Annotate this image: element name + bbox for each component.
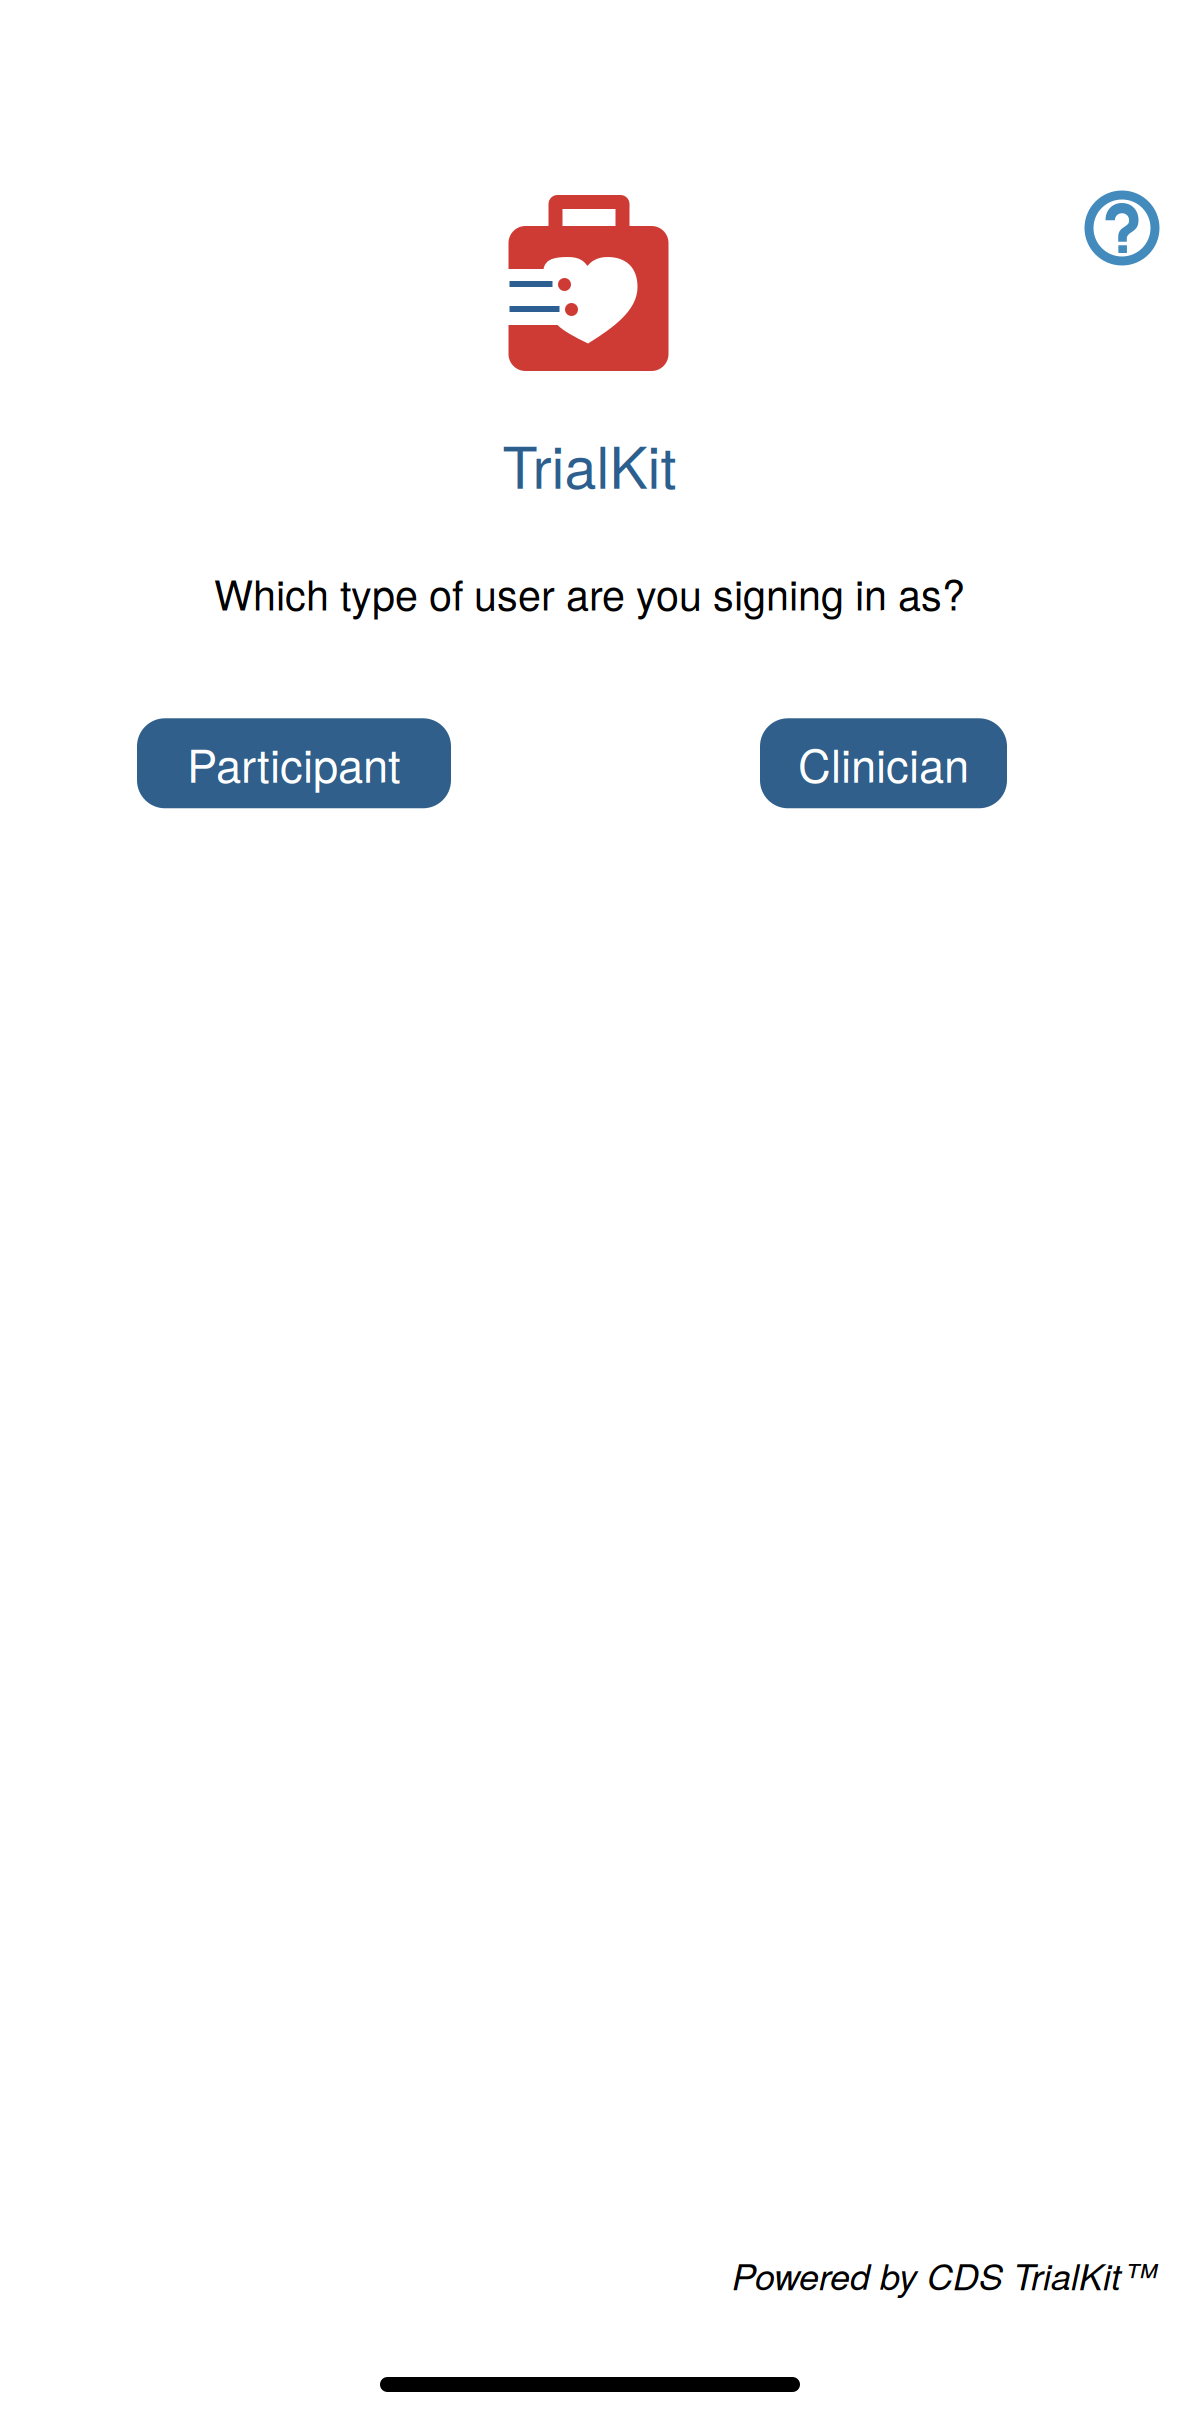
- staticText: TrialKit: [502, 423, 676, 505]
- staticText: Which type of user are you signing in as…: [214, 563, 965, 622]
- staticText: Powered by CDS TrialKit™: [732, 2250, 1157, 2300]
- button[interactable]: Participant: [137, 718, 451, 808]
- staticText: Participant: [187, 731, 401, 796]
- button[interactable]: Clinician: [760, 718, 1007, 808]
- button[interactable]: Help: [1074, 180, 1170, 276]
- staticText: Clinician: [798, 731, 969, 796]
